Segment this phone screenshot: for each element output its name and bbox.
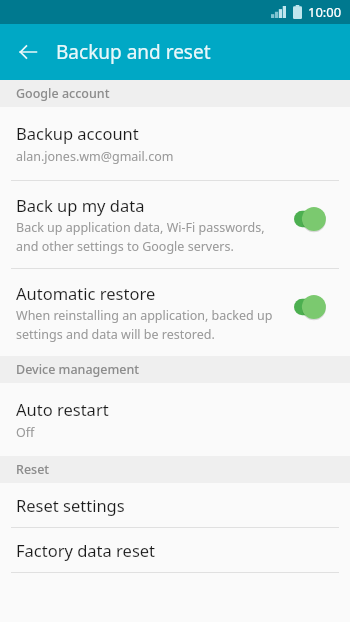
staticText: Reset settings bbox=[16, 494, 125, 516]
staticText: When reinstalling an application, backed… bbox=[16, 307, 273, 324]
staticText: Automatic restore bbox=[16, 282, 156, 304]
button[interactable]: Back up my data toggle, on bbox=[292, 206, 336, 232]
staticText: 10:00 bbox=[308, 3, 342, 21]
staticText: Back up my data bbox=[16, 194, 145, 216]
button[interactable]: Reset settings bbox=[0, 483, 350, 527]
staticText: Off bbox=[16, 424, 35, 441]
staticText: alan.jones.wm@gmail.com bbox=[16, 148, 174, 165]
staticText: Backup and reset bbox=[56, 39, 211, 65]
button[interactable]: Automatic restore toggle, on bbox=[292, 294, 336, 320]
staticText: Reset bbox=[16, 461, 50, 478]
staticText: Back up application data, Wi-Fi password… bbox=[16, 219, 265, 236]
staticText: Google account bbox=[16, 85, 110, 102]
staticText: Backup account bbox=[16, 122, 139, 144]
staticText: Factory data reset bbox=[16, 539, 156, 561]
button[interactable]: Back up my data bbox=[0, 181, 350, 268]
button[interactable]: Back bbox=[6, 30, 50, 74]
staticText: Device management bbox=[16, 361, 140, 378]
button[interactable]: Automatic restore bbox=[0, 269, 350, 356]
staticText: settings and data will be restored. bbox=[16, 326, 215, 343]
button[interactable]: Factory data reset bbox=[0, 528, 350, 572]
staticText: and other settings to Google servers. bbox=[16, 238, 234, 255]
button[interactable]: Auto restart bbox=[0, 383, 350, 456]
button[interactable]: Backup account bbox=[0, 107, 350, 180]
staticText: Auto restart bbox=[16, 398, 109, 420]
